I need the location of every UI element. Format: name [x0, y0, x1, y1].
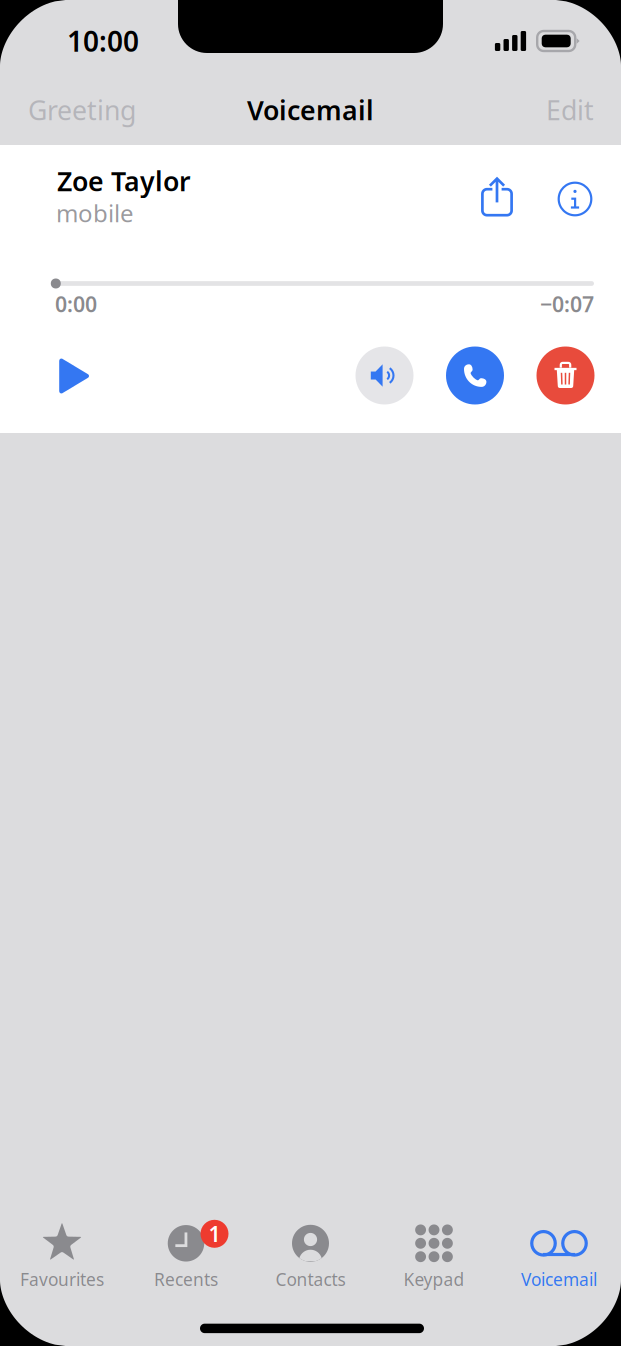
button[interactable]: Voicemail [497, 1217, 621, 1293]
button[interactable]: Contacts [248, 1217, 372, 1293]
staticText: Favourites [20, 1268, 104, 1291]
button[interactable]: Share [481, 176, 513, 216]
button[interactable]: Edit [522, 77, 610, 143]
staticText: Voicemail [247, 92, 374, 128]
button[interactable]: Delete [536, 346, 594, 404]
staticText: mobile [56, 197, 134, 229]
staticText: 0:00 [55, 290, 97, 318]
staticText: Contacts [275, 1268, 345, 1291]
button[interactable]: Keypad [372, 1217, 496, 1293]
staticText: 10:00 [67, 22, 139, 60]
button[interactable]: Play [48, 347, 100, 404]
staticText: Keypad [403, 1268, 464, 1291]
staticText: Zoe Taylor [57, 163, 191, 199]
staticText: 1 [208, 1220, 220, 1248]
staticText: Edit [546, 92, 594, 128]
button[interactable]: Info [558, 182, 592, 216]
button[interactable]: Speaker [355, 346, 413, 404]
staticText: Voicemail [521, 1268, 597, 1291]
button[interactable]: 1 [124, 1217, 248, 1293]
button[interactable]: Call back [446, 346, 504, 404]
button[interactable]: Favourites [0, 1217, 124, 1293]
staticText: −0:07 [540, 290, 594, 318]
button[interactable]: Greeting [12, 77, 154, 143]
staticText: Greeting [28, 92, 136, 128]
staticText: Recents [154, 1268, 218, 1291]
